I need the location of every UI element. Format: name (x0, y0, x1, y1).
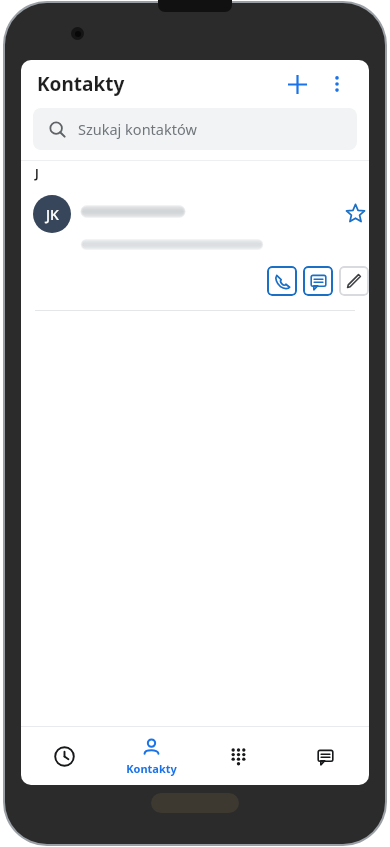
staticText: J (35, 166, 39, 182)
button[interactable]: Favorite (337, 195, 369, 231)
button[interactable]: Edit contact (339, 266, 369, 296)
button[interactable]: Messages (282, 727, 369, 785)
button[interactable]: Call (267, 266, 297, 296)
button[interactable]: Send message (303, 266, 333, 296)
button[interactable]: Szukaj kontaktów (33, 108, 357, 150)
button[interactable]: Contacts (108, 727, 195, 785)
button[interactable]: More options (317, 64, 357, 104)
staticText: JK (46, 205, 59, 224)
button[interactable]: JK (21, 187, 369, 311)
staticText: Kontakty (37, 71, 125, 97)
button[interactable]: Dialpad (195, 727, 282, 785)
staticText: Kontakty (126, 761, 177, 776)
button[interactable]: Recents (21, 727, 108, 785)
staticText: Szukaj kontaktów (78, 119, 197, 139)
button[interactable]: Add contact (277, 64, 317, 104)
